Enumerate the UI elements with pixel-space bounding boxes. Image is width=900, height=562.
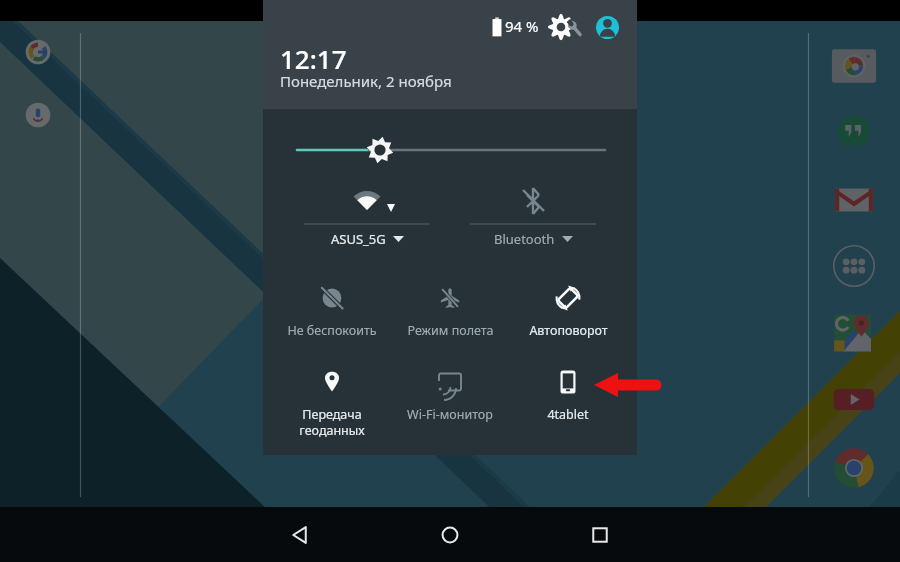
staticText: Не беспокоить bbox=[287, 322, 377, 339]
button[interactable]: Wi-Fi-монитор bbox=[391, 354, 509, 438]
button[interactable]: 4tablet bbox=[509, 354, 627, 438]
button[interactable]: Google Search bbox=[24, 38, 52, 66]
button[interactable]: Maps bbox=[831, 310, 877, 356]
staticText: Bluetooth bbox=[494, 230, 555, 248]
button[interactable]: Hangouts bbox=[832, 110, 876, 154]
button[interactable]: Bluetooth bbox=[450, 171, 616, 253]
staticText: 12:17 bbox=[280, 41, 347, 76]
button[interactable]: Gmail bbox=[832, 178, 876, 222]
button[interactable]: Brightness bbox=[285, 126, 615, 174]
button[interactable]: Home bbox=[415, 507, 485, 562]
staticText: Передача геоданных bbox=[299, 406, 365, 438]
staticText: 4tablet bbox=[547, 406, 589, 423]
button[interactable]: Back bbox=[265, 507, 335, 562]
button[interactable]: Camera bbox=[831, 43, 877, 89]
button[interactable]: Chrome bbox=[831, 445, 877, 491]
button[interactable]: Режим полета bbox=[391, 270, 509, 354]
staticText: ASUS_5G bbox=[331, 230, 386, 248]
staticText: Автоповорот bbox=[529, 322, 608, 339]
button[interactable]: Voice Search bbox=[24, 101, 52, 129]
staticText: Режим полета bbox=[407, 322, 494, 339]
button[interactable]: YouTube bbox=[831, 377, 877, 423]
button[interactable]: Автоповорот bbox=[509, 270, 627, 354]
staticText: Понедельник, 2 ноября bbox=[280, 71, 452, 91]
button[interactable]: Recents bbox=[565, 507, 635, 562]
button[interactable]: Settings bbox=[549, 13, 589, 41]
button[interactable]: Не беспокоить bbox=[273, 270, 391, 354]
staticText: 94 % bbox=[505, 16, 539, 36]
button[interactable]: ASUS_5G bbox=[284, 171, 450, 253]
staticText: Wi-Fi-монитор bbox=[407, 406, 493, 423]
button[interactable]: Передача геоданных bbox=[273, 354, 391, 438]
button[interactable]: User bbox=[596, 16, 619, 39]
button[interactable]: Apps bbox=[831, 243, 877, 289]
